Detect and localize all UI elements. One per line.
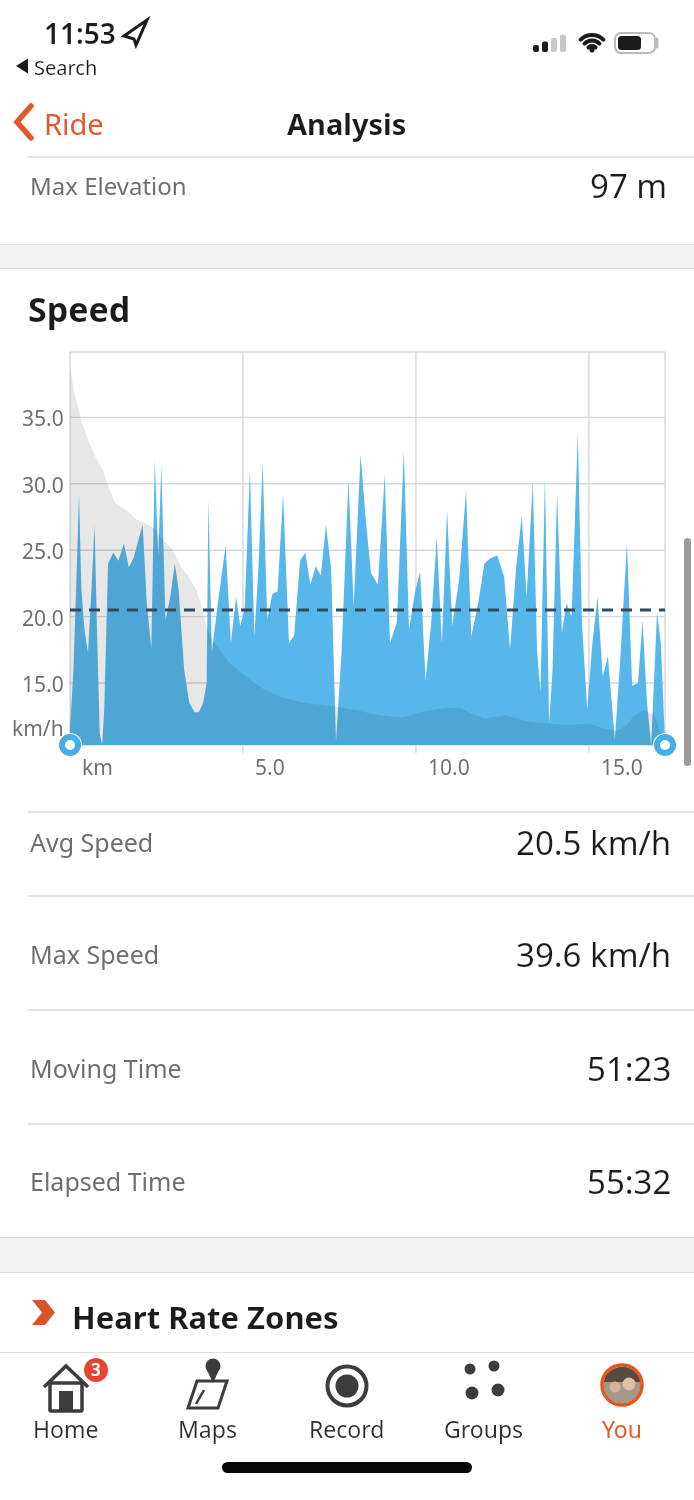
staticText: Search [34,54,98,81]
button[interactable]: Maps [147,1356,267,1446]
staticText: km/h [12,714,64,743]
button[interactable]: Moving Time [0,1023,694,1113]
staticText: 20.0 [22,604,64,633]
button[interactable]: Ride [44,104,104,143]
staticText: Groups [444,1413,524,1444]
staticText: 15.0 [601,753,643,782]
staticText: 51:23 [587,1046,672,1091]
staticText: Ride [44,104,104,143]
button[interactable]: Home [6,1356,126,1446]
staticText: Moving Time [30,1051,182,1085]
button[interactable]: Max Speed [0,909,694,999]
button[interactable]: Avg Speed [0,797,694,887]
staticText: Home [33,1413,99,1444]
staticText: 3 [91,1358,101,1381]
button[interactable]: Elapsed Time [0,1136,694,1226]
staticText: Maps [178,1413,237,1444]
staticText: Speed [28,286,131,332]
staticText: Max Speed [30,937,160,971]
staticText: 30.0 [22,471,64,500]
button[interactable]: You [562,1356,682,1446]
staticText: 20.5 km/h [516,820,672,865]
staticText: You [602,1413,642,1444]
button[interactable]: Max Elevation [0,156,694,214]
button[interactable]: Heart Rate Zones [0,1284,694,1344]
staticText: 39.6 km/h [516,932,672,977]
staticText: Analysis [287,104,407,143]
staticText: 15.0 [22,670,64,699]
staticText: Heart Rate Zones [72,1296,339,1338]
staticText: Avg Speed [30,825,154,859]
staticText: 55:32 [587,1159,672,1204]
staticText: 10.0 [428,753,470,782]
staticText: 25.0 [22,537,64,566]
staticText: 5.0 [255,753,285,782]
staticText: Max Elevation [30,169,187,202]
staticText: Elapsed Time [30,1164,186,1198]
button[interactable]: Record [287,1356,407,1446]
staticText: km [82,753,113,782]
button[interactable]: Groups [424,1356,544,1446]
staticText: 97 m [590,163,668,208]
staticText: Record [309,1413,385,1444]
staticText: 35.0 [22,404,64,433]
staticText: 11:53 [44,14,116,52]
